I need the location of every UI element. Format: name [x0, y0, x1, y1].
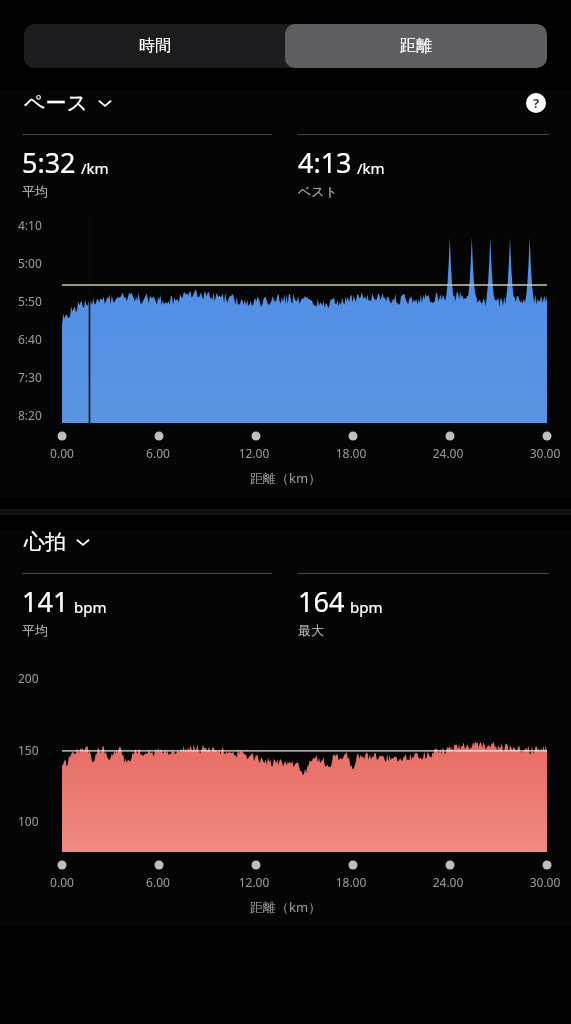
staticText: 164: [298, 583, 345, 620]
staticText: 30.00: [519, 445, 571, 461]
button[interactable]: 時間: [24, 24, 285, 68]
button[interactable]: ヘルプ: [523, 90, 549, 116]
staticText: 平均: [22, 622, 48, 638]
staticText: 6.00: [132, 874, 184, 890]
staticText: 4:10: [18, 217, 42, 233]
staticText: bpm: [350, 597, 383, 617]
button[interactable]: 心拍: [24, 529, 91, 555]
staticText: 12.00: [228, 445, 280, 461]
staticText: 最大: [298, 622, 324, 638]
staticText: 7:30: [18, 369, 42, 385]
staticText: 5:00: [18, 255, 42, 271]
staticText: 100: [18, 813, 39, 829]
button[interactable]: ペース: [24, 90, 113, 116]
staticText: 12.00: [228, 874, 280, 890]
staticText: 6.00: [132, 445, 184, 461]
staticText: 0.00: [36, 445, 88, 461]
staticText: ペース: [24, 90, 88, 116]
staticText: 平均: [22, 183, 48, 199]
staticText: 5:50: [18, 293, 42, 309]
staticText: 4:13: [298, 144, 352, 181]
staticText: 18.00: [325, 445, 377, 461]
staticText: ベスト: [298, 183, 338, 199]
staticText: 141: [22, 583, 69, 620]
staticText: /km: [81, 158, 109, 178]
staticText: 5:32: [22, 144, 76, 181]
staticText: 距離（km）: [0, 898, 571, 916]
staticText: 150: [18, 742, 39, 758]
staticText: 6:40: [18, 331, 42, 347]
staticText: ?: [533, 94, 540, 112]
staticText: 0.00: [36, 874, 88, 890]
staticText: 24.00: [422, 874, 474, 890]
staticText: 200: [18, 670, 39, 686]
staticText: 30.00: [519, 874, 571, 890]
staticText: 24.00: [422, 445, 474, 461]
staticText: 18.00: [325, 874, 377, 890]
staticText: 心拍: [24, 529, 66, 555]
staticText: 距離: [400, 36, 432, 56]
staticText: 8:20: [18, 407, 42, 423]
staticText: 距離（km）: [0, 469, 571, 487]
staticText: 時間: [139, 36, 171, 56]
staticText: bpm: [74, 597, 107, 617]
button[interactable]: 距離: [285, 24, 547, 68]
staticText: /km: [357, 158, 385, 178]
